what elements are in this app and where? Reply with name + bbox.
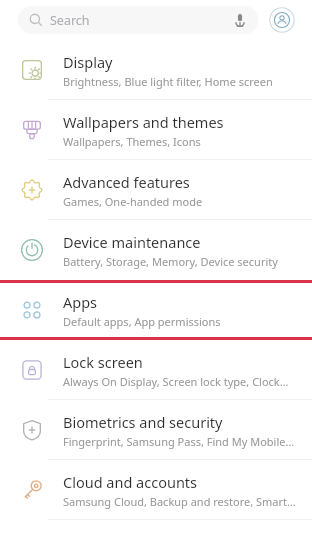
staticText: Cloud and accounts xyxy=(63,472,198,492)
staticText: Default apps, App permissions xyxy=(63,314,221,329)
button[interactable]: Account xyxy=(268,6,296,34)
staticText: Biometrics and security xyxy=(63,412,223,432)
staticText: Lock screen xyxy=(63,352,143,372)
button[interactable]: Wallpapers and themes xyxy=(0,100,312,160)
button[interactable]: Advanced features xyxy=(0,160,312,220)
button[interactable]: Voice search xyxy=(228,8,252,32)
staticText: Games, One-handed mode xyxy=(63,194,203,209)
staticText: Always On Display, Screen lock type, Clo… xyxy=(63,374,289,389)
staticText: Samsung Cloud, Backup and restore, Smart… xyxy=(63,494,296,509)
button[interactable]: Device maintenance xyxy=(0,220,312,280)
staticText: Device maintenance xyxy=(63,232,201,252)
staticText: Battery, Storage, Memory, Device securit… xyxy=(63,254,278,269)
button[interactable]: Search xyxy=(18,6,258,34)
staticText: Search xyxy=(50,12,90,29)
button[interactable]: Cloud and accounts xyxy=(0,460,312,520)
staticText: Wallpapers, Themes, Icons xyxy=(63,134,201,149)
button[interactable]: Apps xyxy=(0,283,312,337)
staticText: Brightness, Blue light filter, Home scre… xyxy=(63,74,273,89)
staticText: Advanced features xyxy=(63,172,190,192)
button[interactable]: Lock screen xyxy=(0,340,312,400)
staticText: Wallpapers and themes xyxy=(63,112,224,132)
staticText: Display xyxy=(63,52,113,72)
button[interactable]: Display xyxy=(0,40,312,100)
staticText: Fingerprint, Samsung Pass, Find My Mobil… xyxy=(63,434,295,449)
button[interactable]: Biometrics and security xyxy=(0,400,312,460)
staticText: Apps xyxy=(63,292,98,312)
